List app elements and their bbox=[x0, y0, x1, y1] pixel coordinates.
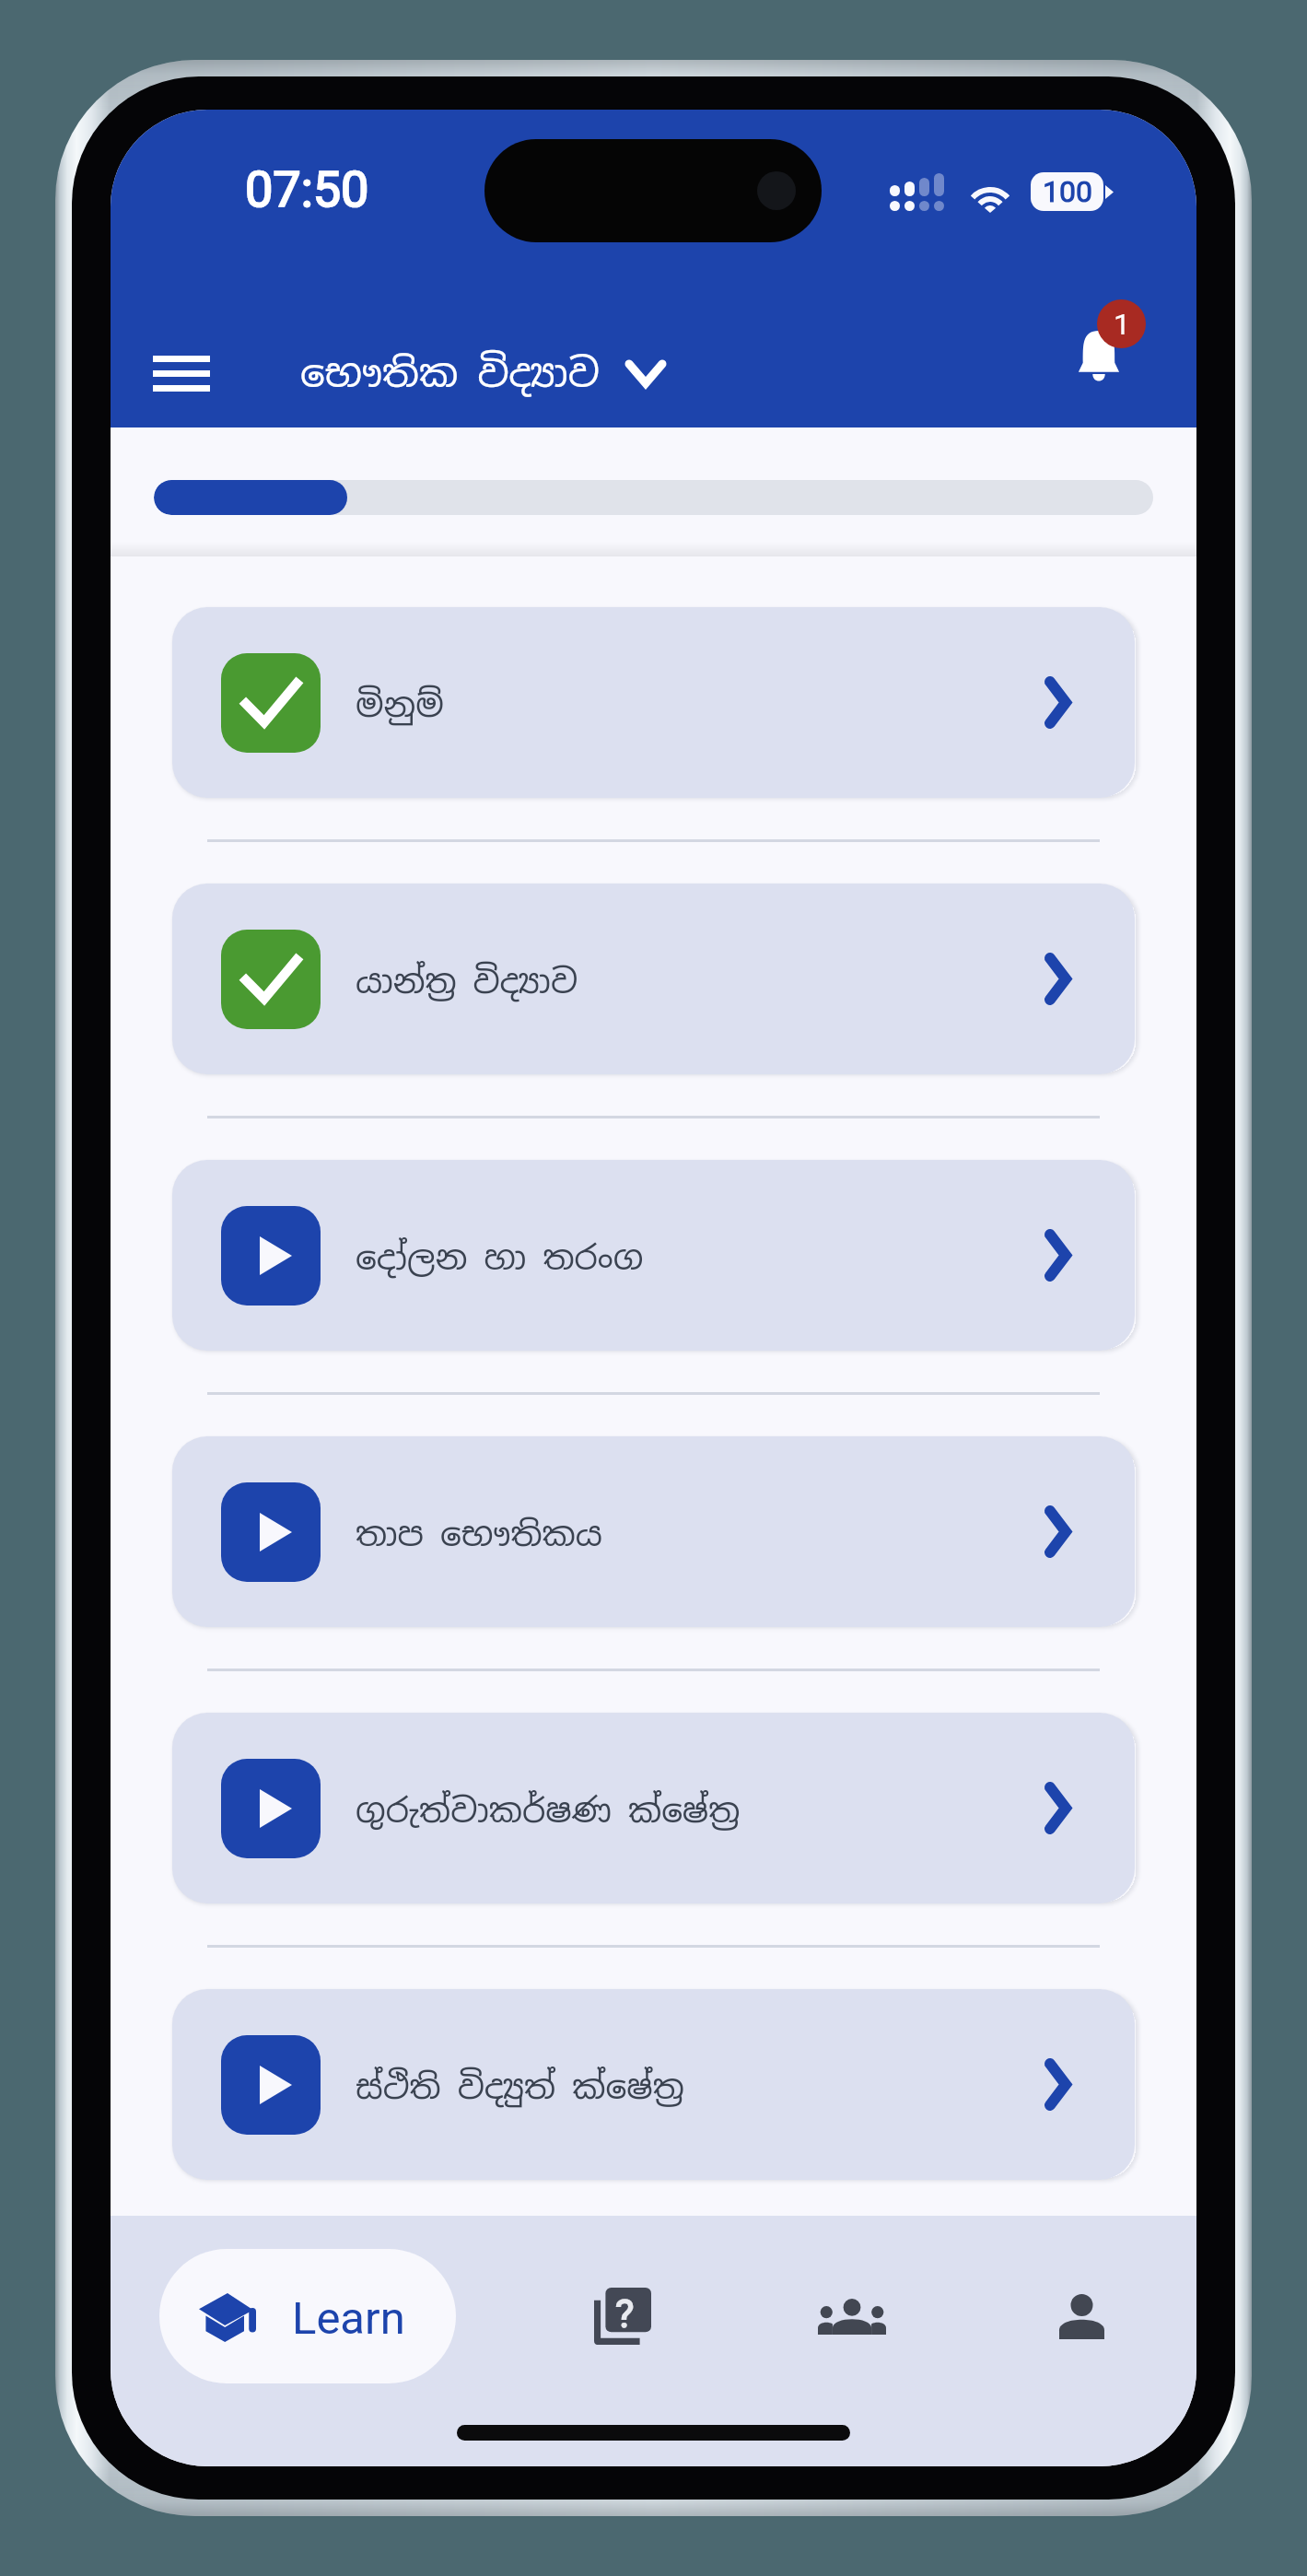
button[interactable]: Notifications bbox=[1033, 292, 1159, 400]
staticText: Learn bbox=[292, 2292, 405, 2345]
staticText: ගුරුත්වාකර්ෂණ ක්ෂේත්‍ර bbox=[356, 1789, 741, 1832]
staticText: 07:50 bbox=[245, 160, 369, 218]
button[interactable]: Community bbox=[783, 2247, 921, 2385]
staticText: මිනුම් bbox=[356, 684, 444, 727]
button[interactable]: ගුරුත්වාකර්ෂණ ක්ෂේත්‍ර bbox=[172, 1713, 1135, 1903]
button[interactable]: භෞතික විද්‍යාව bbox=[286, 320, 677, 427]
button[interactable]: තාප භෞතිකය bbox=[172, 1436, 1135, 1627]
button[interactable]: මිනුම් bbox=[172, 607, 1135, 798]
staticText: භෞතික විද්‍යාව bbox=[300, 348, 600, 399]
staticText: දෝලන හා තරංග bbox=[356, 1236, 644, 1280]
button[interactable]: Open navigation menu bbox=[125, 320, 238, 427]
staticText: තාප භෞතිකය bbox=[356, 1513, 603, 1556]
staticText: ස්ථිති විද්‍යුත් ක්ෂේත්‍ර bbox=[356, 2066, 684, 2109]
staticText: 100 bbox=[1043, 174, 1092, 209]
button[interactable]: Profile bbox=[1012, 2247, 1150, 2385]
button[interactable]: දෝලන හා තරංග bbox=[172, 1160, 1135, 1351]
button[interactable]: Learn bbox=[159, 2249, 456, 2383]
staticText: යාන්ත්‍ර විද්‍යාව bbox=[356, 960, 578, 1003]
staticText: 1 bbox=[1114, 307, 1130, 342]
button[interactable]: යාන්ත්‍ර විද්‍යාව bbox=[172, 884, 1135, 1074]
button[interactable]: ස්ථිති විද්‍යුත් ක්ෂේත්‍ර bbox=[172, 1989, 1135, 2180]
button[interactable]: Quiz bbox=[554, 2247, 692, 2385]
staticText: ? bbox=[615, 2290, 635, 2336]
